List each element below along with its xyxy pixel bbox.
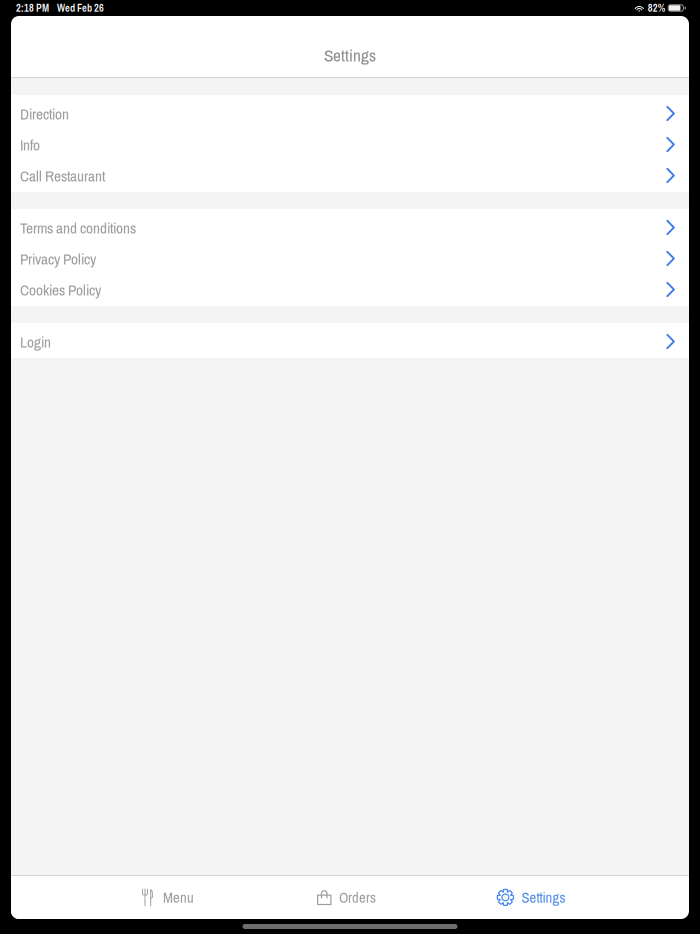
staticText: 82% [648,1,666,15]
staticText: Cookies Policy [20,280,101,300]
staticText: Terms and conditions [20,218,136,238]
button[interactable]: Privacy Policy [11,242,689,273]
staticText: Settings [521,888,565,907]
staticText: Menu [163,888,194,907]
button[interactable]: Info [11,128,689,159]
button[interactable]: Terms and conditions [11,211,689,242]
button[interactable]: Orders [312,876,381,919]
button[interactable]: Cookies Policy [11,273,689,304]
staticText: Call Restaurant [20,166,105,186]
staticText: Direction [20,104,69,124]
staticText: 2:18 PM [16,1,49,15]
button[interactable]: Settings [492,876,570,919]
button[interactable]: Call Restaurant [11,159,689,190]
button[interactable]: Login [11,325,689,356]
staticText: Settings [324,44,376,67]
staticText: Login [20,332,51,352]
button[interactable]: Menu [138,876,198,919]
staticText: Info [20,135,40,155]
button[interactable]: Direction [11,97,689,128]
staticText: Privacy Policy [20,249,96,269]
staticText: Orders [339,888,376,907]
staticText: Wed Feb 26 [57,1,104,15]
